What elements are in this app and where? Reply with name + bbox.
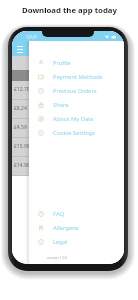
staticText: Allergens (53, 224, 79, 232)
staticText: £14.90 (14, 162, 30, 169)
staticText: About My Data (53, 115, 94, 123)
staticText: Download the app today (22, 5, 117, 16)
staticText: Legal (53, 238, 68, 246)
staticText: TAP (26, 33, 37, 41)
staticText: Payment Methods (53, 73, 103, 81)
button[interactable]: Payment Methods (29, 70, 121, 84)
button[interactable]: Previous Orders (29, 84, 121, 98)
staticText: FAQ (53, 210, 65, 218)
button[interactable]: About My Data (29, 112, 121, 126)
staticText: Previous Orders (53, 87, 97, 95)
staticText: Share (53, 101, 69, 109)
button[interactable]: Cookie Settings (29, 126, 121, 140)
staticText: £8.24 (14, 105, 27, 112)
button[interactable]: Open navigation menu (17, 46, 23, 53)
staticText: £15.99 (14, 143, 30, 150)
button[interactable]: Allergens (29, 221, 121, 235)
staticText: Profile (53, 59, 71, 67)
staticText: £12.70 (14, 86, 30, 93)
staticText: Cookie Settings (53, 129, 96, 137)
staticText: £4.59 (14, 124, 27, 131)
button[interactable]: Legal (29, 235, 121, 249)
button[interactable]: Share (29, 98, 121, 112)
button[interactable]: FAQ (29, 207, 121, 221)
button[interactable]: Profile (29, 56, 121, 70)
staticText: version 1.0.3 (47, 255, 68, 260)
